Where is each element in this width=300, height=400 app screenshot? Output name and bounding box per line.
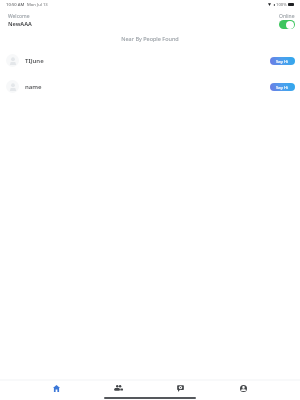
staticText: Mon Jul 13	[27, 2, 48, 8]
staticText: Online	[279, 13, 295, 20]
staticText: 100%	[276, 2, 287, 8]
staticText: NewAAA	[8, 20, 32, 27]
button[interactable]: Online toggle	[279, 20, 295, 29]
staticText: name	[25, 83, 42, 91]
button[interactable]: Account	[212, 381, 275, 395]
staticText: Say Hi	[276, 58, 289, 64]
button[interactable]: Say Hi	[270, 83, 295, 91]
button[interactable]: TIJune	[0, 54, 300, 67]
button[interactable]: Say Hi	[270, 57, 295, 65]
staticText: Welcome	[8, 13, 30, 20]
button[interactable]: Chat	[149, 381, 212, 395]
staticText: 10:50 AM	[6, 2, 25, 8]
staticText: TIJune	[25, 57, 44, 65]
button[interactable]: name	[0, 80, 300, 93]
staticText: Near By People Found	[0, 35, 300, 42]
button[interactable]: People	[87, 381, 149, 395]
button[interactable]: Home	[25, 381, 87, 395]
staticText: Say Hi	[276, 84, 289, 90]
